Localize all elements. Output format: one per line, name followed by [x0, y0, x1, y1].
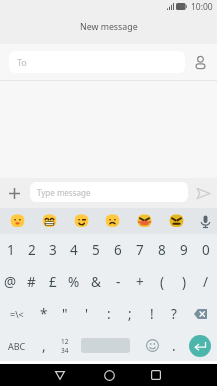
button[interactable]: ; [119, 298, 141, 330]
staticText: 10:00 [191, 1, 213, 13]
button[interactable]: Home [98, 364, 120, 386]
staticText: @ [4, 273, 17, 291]
button[interactable]: 5 [85, 234, 107, 266]
button[interactable]: 0 [195, 234, 217, 266]
button[interactable]: & [85, 266, 107, 298]
button[interactable]: 4 [63, 234, 85, 266]
button[interactable]: % [63, 266, 85, 298]
button[interactable]: Back [49, 364, 71, 386]
staticText: / [203, 273, 209, 291]
staticText: To [17, 56, 27, 68]
staticText: 4 [70, 241, 78, 259]
staticText: New message [80, 21, 138, 33]
staticText: " [62, 305, 68, 323]
button[interactable]: ! [141, 298, 163, 330]
staticText: 34 [61, 346, 69, 355]
button[interactable]: ' [76, 298, 98, 330]
button[interactable]: Emoji [70, 210, 92, 232]
staticText: 2 [28, 241, 36, 259]
button[interactable]: Voice input [194, 210, 216, 232]
button[interactable]: Contacts [189, 51, 211, 73]
button[interactable]: Emoji [101, 210, 123, 232]
button[interactable]: ABC [0, 330, 33, 361]
staticText: ABC [8, 340, 26, 352]
button[interactable]: Emoji [133, 210, 155, 232]
staticText: + [136, 273, 144, 291]
button[interactable]: @ [0, 266, 21, 298]
button[interactable]: 12 [54, 330, 76, 361]
staticText: ( [160, 273, 165, 291]
button[interactable]: 9 [173, 234, 195, 266]
button[interactable]: £ [42, 266, 63, 298]
staticText: 3 [49, 241, 57, 259]
button[interactable]: To [9, 51, 185, 73]
button[interactable]: Emoji keyboard [141, 330, 163, 361]
button[interactable]: Emoji [165, 210, 187, 232]
button[interactable]: . [163, 330, 185, 361]
staticText: 6 [114, 241, 122, 259]
staticText: * [40, 305, 48, 323]
button[interactable]: 6 [107, 234, 129, 266]
button[interactable]: ? [163, 298, 185, 330]
button[interactable]: " [54, 298, 76, 330]
staticText: ) [182, 273, 187, 291]
button[interactable]: # [21, 266, 42, 298]
staticText: ; [128, 305, 132, 323]
staticText: 9 [180, 241, 188, 259]
button[interactable]: 8 [151, 234, 173, 266]
staticText: 1 [7, 241, 15, 259]
staticText: ' [85, 305, 89, 323]
staticText: % [68, 273, 80, 291]
button[interactable]: Add attachment [3, 182, 25, 204]
button[interactable]: 7 [129, 234, 151, 266]
button[interactable]: Send [192, 182, 214, 204]
button[interactable]: Emoji [6, 210, 28, 232]
staticText: 7 [136, 241, 144, 259]
button[interactable]: 1 [0, 234, 21, 266]
button[interactable]: 3 [42, 234, 63, 266]
button[interactable]: Enter [189, 335, 211, 357]
staticText: 12 [61, 337, 69, 346]
staticText: =\< [10, 308, 24, 320]
staticText: , [42, 337, 46, 355]
button[interactable]: =\< [0, 298, 33, 330]
staticText: : [107, 305, 111, 323]
staticText: - [116, 273, 121, 291]
staticText: & [91, 273, 101, 291]
button[interactable]: - [107, 266, 129, 298]
staticText: # [27, 273, 36, 291]
staticText: ? [171, 305, 177, 323]
button[interactable]: * [33, 298, 55, 330]
button[interactable]: ( [151, 266, 173, 298]
staticText: 8 [158, 241, 166, 259]
staticText: ! [150, 305, 154, 323]
button[interactable]: Backspace [184, 298, 217, 330]
button[interactable]: Emoji [38, 210, 60, 232]
button[interactable]: / [195, 266, 217, 298]
button[interactable]: + [129, 266, 151, 298]
staticText: 5 [92, 241, 100, 259]
staticText: Type message [37, 187, 91, 198]
button[interactable]: ) [173, 266, 195, 298]
staticText: 0 [202, 241, 210, 259]
button[interactable]: , [33, 330, 55, 361]
button[interactable]: : [98, 298, 120, 330]
staticText: . [172, 337, 176, 355]
button[interactable]: Recents [145, 364, 167, 386]
button[interactable]: Type message [30, 182, 188, 202]
button[interactable]: 2 [21, 234, 42, 266]
staticText: £ [49, 273, 57, 291]
